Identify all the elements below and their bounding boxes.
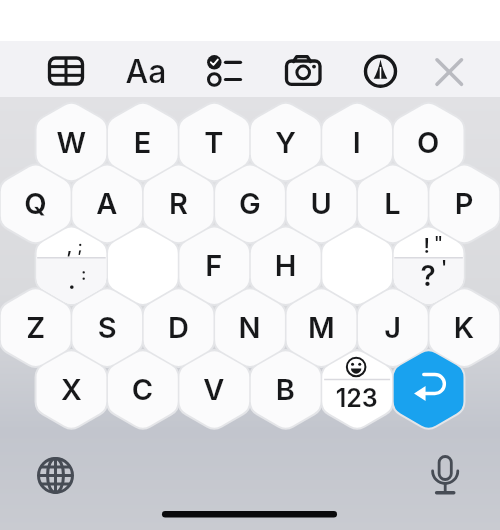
button[interactable]: [72, 288, 142, 368]
button[interactable]: [1, 288, 71, 368]
button[interactable]: [108, 349, 178, 429]
button[interactable]: [358, 288, 428, 368]
button[interactable]: [179, 226, 249, 306]
button[interactable]: [1, 164, 71, 244]
button[interactable]: [358, 164, 428, 244]
button[interactable]: [251, 102, 321, 182]
button[interactable]: [33, 453, 78, 498]
button[interactable]: [144, 288, 214, 368]
button[interactable]: [144, 164, 214, 244]
button[interactable]: [36, 349, 106, 429]
button[interactable]: [72, 164, 142, 244]
button[interactable]: [215, 288, 285, 368]
button[interactable]: [36, 102, 106, 182]
button[interactable]: [322, 226, 392, 306]
button[interactable]: [356, 47, 404, 95]
button[interactable]: [423, 453, 468, 498]
button[interactable]: [425, 47, 473, 95]
button[interactable]: [122, 47, 170, 95]
button[interactable]: [179, 349, 249, 429]
button[interactable]: [108, 226, 178, 306]
button[interactable]: [251, 226, 321, 306]
button[interactable]: [286, 164, 356, 244]
button[interactable]: [251, 349, 321, 429]
button[interactable]: [394, 102, 464, 182]
button[interactable]: [429, 288, 499, 368]
button[interactable]: [429, 164, 499, 244]
button[interactable]: [322, 102, 392, 182]
button[interactable]: [279, 47, 327, 95]
button[interactable]: [200, 47, 248, 95]
button[interactable]: [215, 164, 285, 244]
button[interactable]: [42, 47, 90, 95]
button[interactable]: [394, 226, 464, 306]
button[interactable]: [179, 102, 249, 182]
button[interactable]: [108, 102, 178, 182]
button[interactable]: [36, 226, 106, 306]
button[interactable]: [322, 349, 392, 429]
button[interactable]: [394, 349, 464, 429]
button[interactable]: [286, 288, 356, 368]
